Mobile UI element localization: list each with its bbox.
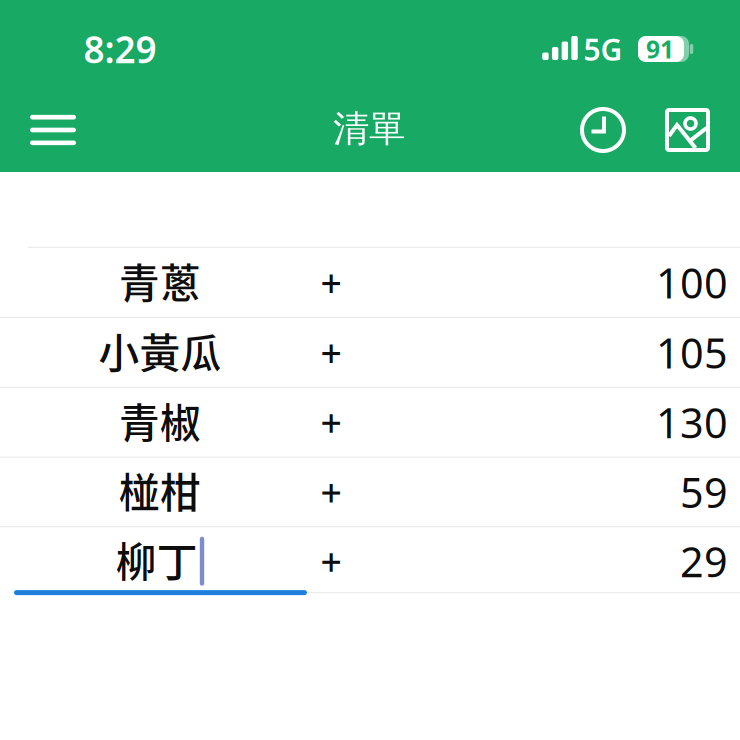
staticText: 清單 bbox=[333, 106, 405, 152]
staticText: + bbox=[320, 466, 341, 517]
staticText: + bbox=[320, 536, 341, 587]
button[interactable]: Add bbox=[320, 318, 342, 387]
staticText: 小黃瓜 bbox=[98, 321, 221, 380]
button[interactable]: 椪柑 bbox=[0, 458, 320, 526]
button[interactable]: Photos bbox=[661, 104, 713, 156]
button[interactable]: 小黃瓜 bbox=[0, 318, 320, 387]
button[interactable]: Add bbox=[320, 248, 342, 317]
staticText: 105 bbox=[656, 324, 728, 381]
button[interactable]: 青椒 bbox=[0, 388, 320, 457]
staticText: 29 bbox=[680, 533, 728, 589]
staticText: 59 bbox=[680, 464, 728, 520]
staticText: + bbox=[320, 397, 341, 448]
staticText: + bbox=[320, 327, 341, 378]
staticText: 8:29 bbox=[83, 24, 156, 74]
staticText: 91 bbox=[646, 32, 674, 66]
staticText: 椪柑 bbox=[119, 460, 201, 519]
staticText: + bbox=[320, 257, 341, 308]
button[interactable]: History bbox=[577, 104, 629, 156]
staticText: 青椒 bbox=[119, 391, 201, 450]
button[interactable]: 柳丁 bbox=[0, 530, 320, 593]
staticText: 100 bbox=[656, 254, 728, 311]
button[interactable]: Add bbox=[320, 388, 342, 457]
button[interactable]: 青蔥 bbox=[0, 248, 320, 317]
staticText: 柳丁 bbox=[116, 530, 198, 589]
button[interactable]: Menu bbox=[23, 100, 83, 160]
button[interactable]: Add bbox=[320, 530, 342, 593]
button[interactable]: Add bbox=[320, 458, 342, 526]
staticText: 青蔥 bbox=[119, 251, 201, 310]
staticText: 5G bbox=[583, 29, 622, 69]
staticText: 130 bbox=[656, 394, 728, 450]
